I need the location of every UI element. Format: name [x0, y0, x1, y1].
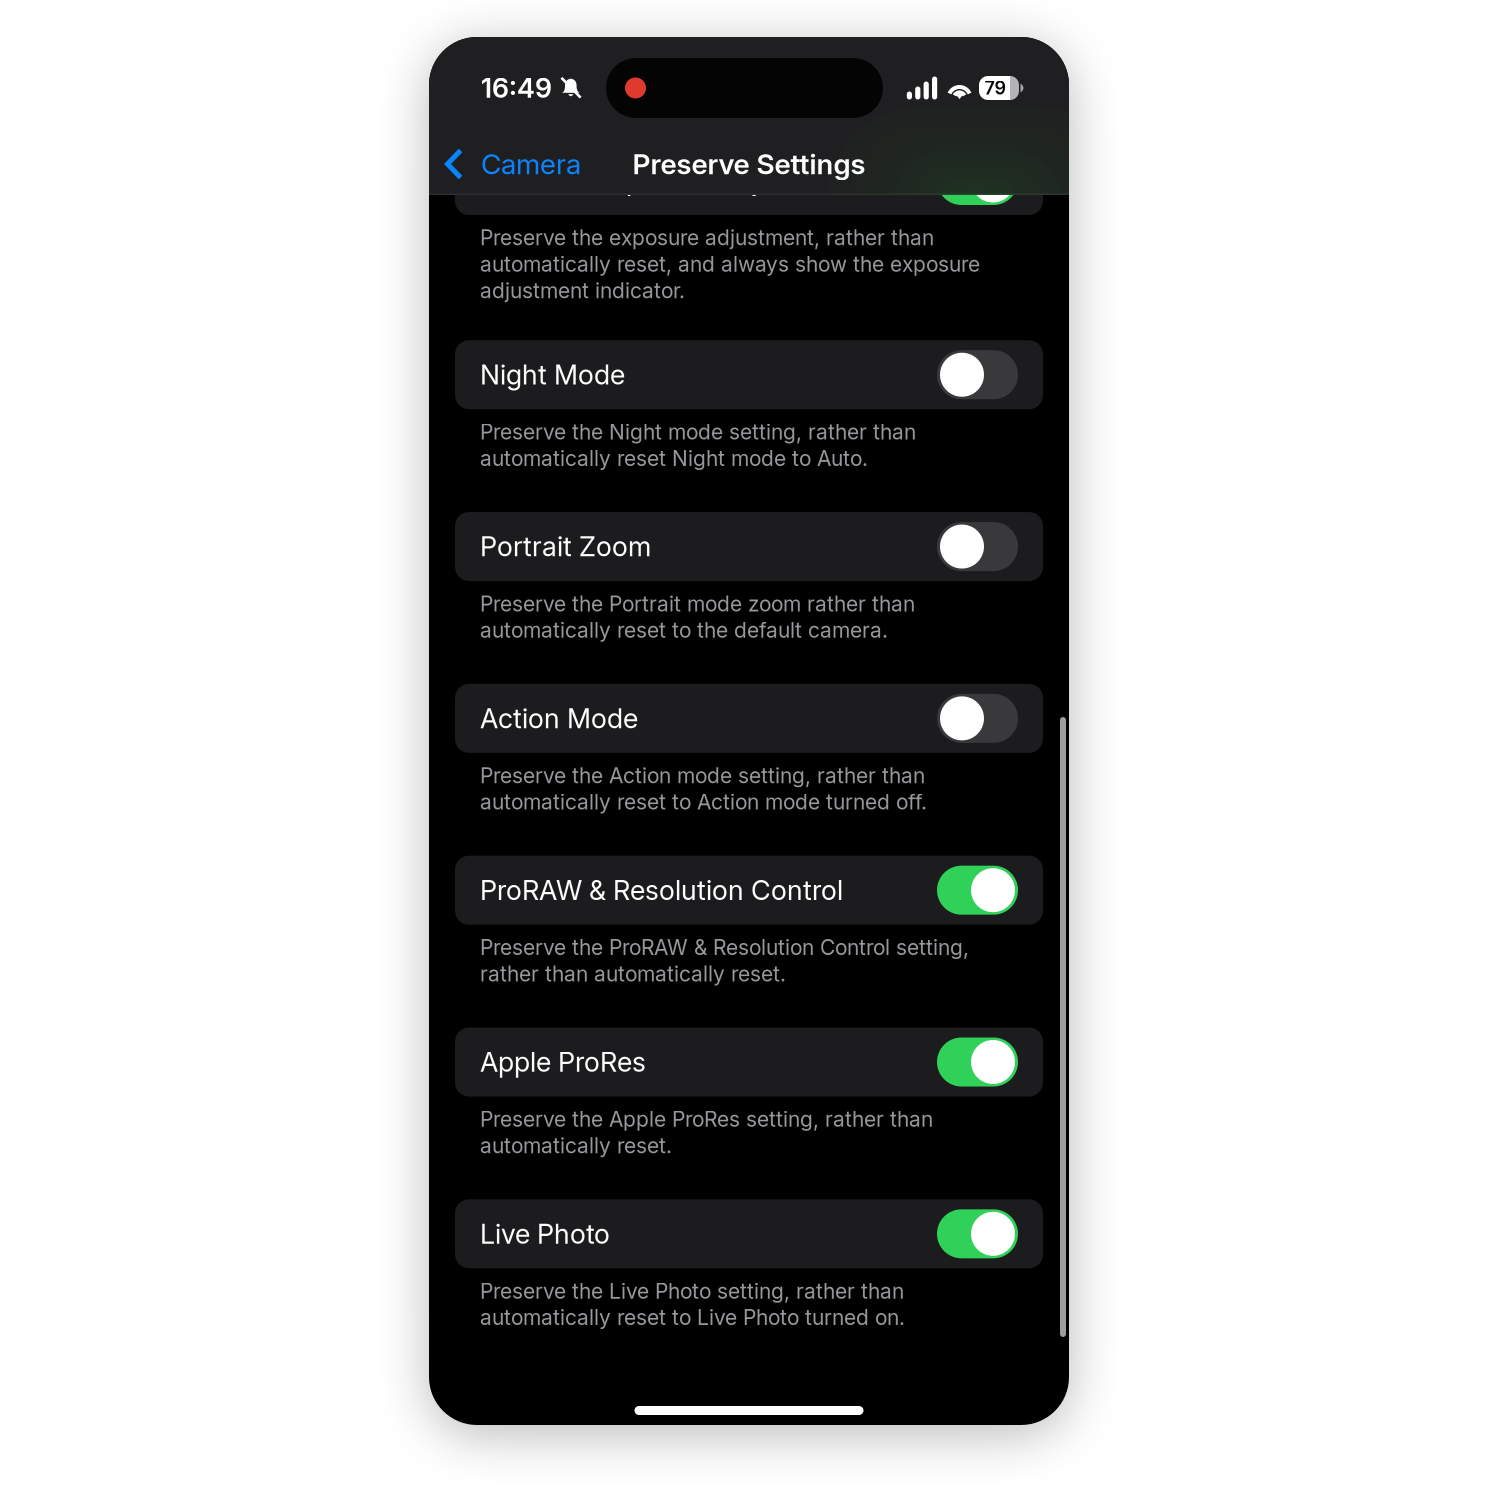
staticText: ProRAW & Resolution Control	[480, 874, 843, 906]
staticText: Portrait Zoom	[480, 530, 651, 563]
staticText: Night Mode	[480, 358, 625, 391]
staticText: Preserve the Action mode setting, rather…	[480, 763, 927, 815]
staticText: 79	[984, 77, 1006, 99]
staticText: Preserve the Apple ProRes setting, rathe…	[480, 1106, 933, 1158]
button[interactable]: Portrait Zoom	[455, 512, 1043, 581]
button[interactable]: Apple ProRes	[455, 1027, 1043, 1096]
staticText: Camera	[481, 147, 581, 181]
button[interactable]: Camera	[429, 133, 595, 195]
staticText: Preserve the Live Photo setting, rather …	[480, 1278, 905, 1330]
staticText: Preserve the ProRAW & Resolution Control…	[480, 935, 969, 986]
staticText: 16:49	[481, 72, 552, 104]
staticText: Action Mode	[480, 702, 638, 735]
staticText: Preserve the Portrait mode zoom rather t…	[480, 591, 915, 643]
staticText: Preserve the Night mode setting, rather …	[480, 419, 916, 471]
button[interactable]: ProRAW & Resolution Control	[455, 856, 1043, 925]
button[interactable]: Live Photo	[455, 1199, 1043, 1268]
button[interactable]: Night Mode	[455, 340, 1043, 409]
staticText: Preserve the exposure adjustment, rather…	[480, 225, 980, 303]
staticText: Preserve Exposure Adjustment	[480, 164, 861, 197]
staticText: Live Photo	[480, 1217, 610, 1250]
button[interactable]: Preserve Exposure Adjustment	[455, 146, 1043, 215]
staticText: Apple ProRes	[480, 1046, 646, 1078]
staticText: Preserve Settings	[632, 147, 865, 181]
button[interactable]: Action Mode	[455, 684, 1043, 753]
